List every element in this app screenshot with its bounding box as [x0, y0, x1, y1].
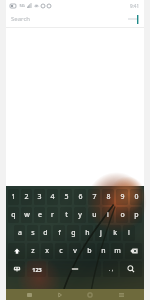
button[interactable]: Backspace [125, 243, 142, 259]
button[interactable]: m [111, 243, 123, 259]
button[interactable]: l [123, 225, 135, 241]
staticText: 2 [24, 192, 29, 202]
button[interactable]: 4 [47, 189, 58, 205]
button[interactable]: t [60, 207, 72, 223]
staticText: i [107, 210, 109, 220]
staticText: j [100, 228, 102, 238]
staticText: k [113, 228, 117, 238]
button[interactable]: x [41, 243, 53, 259]
staticText: n [101, 246, 106, 256]
staticText: c [59, 246, 63, 256]
button[interactable]: Space [48, 261, 101, 277]
staticText: 9 [120, 192, 125, 202]
staticText: Search [11, 15, 30, 23]
button[interactable]: w [21, 207, 32, 223]
staticText: d [43, 228, 48, 238]
staticText: t [65, 210, 68, 220]
button[interactable]: b [83, 243, 95, 259]
staticText: 6 [78, 192, 83, 202]
button[interactable]: 3 [34, 189, 45, 205]
staticText: 5G [19, 3, 25, 8]
button[interactable]: 7 [88, 189, 100, 205]
button[interactable]: c [55, 243, 67, 259]
staticText: s [31, 228, 35, 238]
button[interactable]: p [130, 207, 142, 223]
button[interactable]: Home [83, 289, 97, 300]
button[interactable]: s [27, 225, 38, 241]
button[interactable]: v [69, 243, 81, 259]
button[interactable]: 2 [21, 189, 32, 205]
button[interactable]: h [81, 225, 93, 241]
staticText: 1 [11, 192, 16, 202]
button[interactable]: e [34, 207, 45, 223]
button[interactable]: 9 [116, 189, 128, 205]
button[interactable]: 1 [8, 189, 19, 205]
staticText: g [71, 228, 76, 238]
button[interactable]: z [27, 243, 39, 259]
button[interactable]: g [67, 225, 79, 241]
button[interactable]: f [53, 225, 65, 241]
staticText: z [31, 246, 35, 256]
staticText: e [38, 210, 42, 220]
staticText: b [87, 246, 92, 256]
button[interactable]: j [95, 225, 107, 241]
button[interactable]: o [116, 207, 128, 223]
staticText: f [58, 228, 61, 238]
staticText: 8 [106, 192, 111, 202]
button[interactable]: 5 [60, 189, 72, 205]
button[interactable]: 6 [74, 189, 86, 205]
button[interactable]: 0 [130, 189, 142, 205]
button[interactable]: a [14, 225, 25, 241]
button[interactable]: i [102, 207, 114, 223]
staticText: . , [109, 266, 113, 273]
staticText: 123 [32, 266, 42, 273]
button[interactable]: k [109, 225, 121, 241]
staticText: 5 [64, 192, 69, 202]
button[interactable]: Back [53, 289, 67, 300]
staticText: x [45, 246, 49, 256]
staticText: 3 [37, 192, 42, 202]
staticText: h [85, 228, 90, 238]
staticText: m [114, 246, 121, 256]
staticText: p [134, 210, 139, 220]
staticText: a [18, 228, 22, 238]
button[interactable]: Search [120, 261, 142, 277]
button[interactable]: y [74, 207, 86, 223]
button[interactable]: r [47, 207, 58, 223]
staticText: y [78, 210, 82, 220]
staticText: v [73, 246, 77, 256]
staticText: 9:41 [130, 3, 139, 9]
staticText: w [24, 210, 30, 220]
staticText: r [51, 210, 54, 220]
staticText: u [92, 210, 97, 220]
button[interactable]: . , [103, 261, 118, 277]
button[interactable]: 123 [27, 261, 46, 277]
button[interactable]: 8 [102, 189, 114, 205]
staticText: 7 [92, 192, 97, 202]
button[interactable]: u [88, 207, 100, 223]
staticText: 0 [134, 192, 139, 202]
button[interactable]: d [40, 225, 51, 241]
staticText: q [11, 210, 16, 220]
button[interactable]: Hide keyboard [22, 289, 36, 300]
button[interactable]: q [8, 207, 19, 223]
staticText: 4 [50, 192, 55, 202]
staticText: o [120, 210, 125, 220]
button[interactable]: Recent apps [114, 289, 128, 300]
staticText: l [128, 228, 130, 238]
button[interactable]: Stickers [8, 261, 25, 277]
button[interactable]: Search [6, 11, 144, 27]
button[interactable]: Shift [8, 243, 25, 259]
button[interactable]: n [97, 243, 109, 259]
